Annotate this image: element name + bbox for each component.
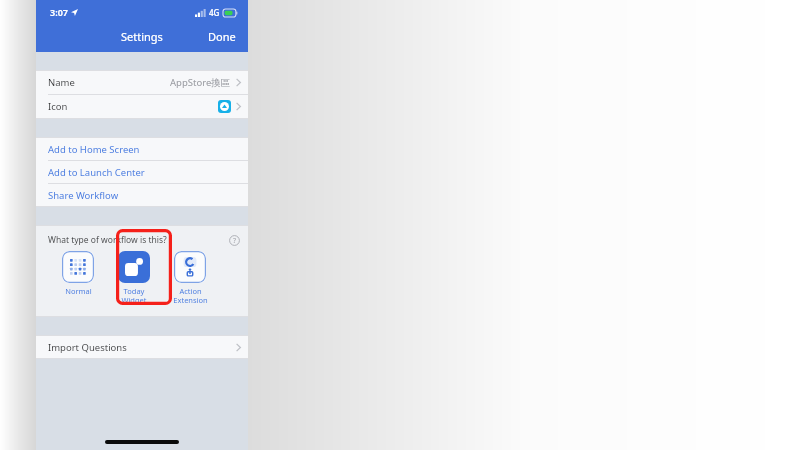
button[interactable]: Add to Launch Center — [36, 161, 248, 183]
button[interactable]: Settings — [115, 27, 169, 46]
button[interactable]: Icon — [36, 95, 248, 118]
staticText: Add to Home Screen — [48, 143, 140, 156]
button[interactable]: Done — [204, 27, 240, 46]
staticText: Share Workflow — [48, 189, 119, 202]
staticText: AppStore換區 — [170, 76, 231, 89]
button[interactable]: Help — [229, 235, 240, 246]
button[interactable]: Name — [36, 71, 248, 94]
staticText: Icon — [48, 100, 68, 113]
button[interactable]: Share Workflow — [36, 184, 248, 206]
staticText: Settings — [121, 29, 163, 44]
button[interactable]: Add to Home Screen — [36, 138, 248, 160]
button[interactable]: Import Questions — [36, 336, 248, 358]
staticText: Today Widget — [121, 286, 147, 305]
staticText: 4G — [209, 7, 220, 18]
staticText: Add to Launch Center — [48, 166, 145, 179]
button[interactable]: Normal — [56, 251, 100, 296]
staticText: Normal — [65, 286, 92, 296]
staticText: ? — [233, 236, 237, 246]
staticText: What type of workflow is this? — [48, 234, 167, 246]
staticText: Done — [208, 29, 236, 44]
staticText: 3:07 — [50, 6, 68, 18]
staticText: Name — [48, 76, 75, 89]
button[interactable]: Action Extension — [168, 251, 212, 305]
button[interactable]: Today Widget — [112, 251, 156, 305]
staticText: Action Extension — [173, 286, 208, 305]
staticText: Import Questions — [48, 341, 127, 354]
